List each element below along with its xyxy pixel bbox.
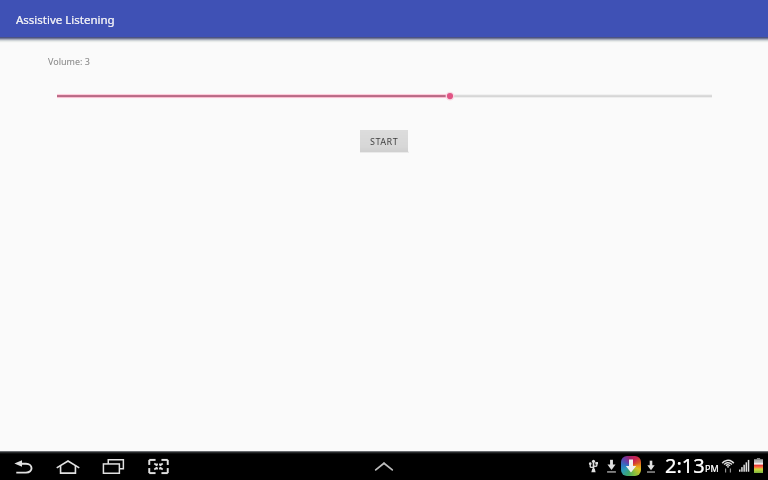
staticText: Volume: 3 — [48, 55, 90, 67]
staticText: 2:13 — [665, 452, 705, 479]
staticText: PM — [705, 462, 719, 474]
button[interactable]: Recent apps — [96, 451, 130, 480]
button[interactable]: Expand status bar — [368, 451, 400, 480]
button[interactable]: Back — [6, 451, 40, 480]
button[interactable]: Home — [50, 451, 86, 480]
button[interactable]: START — [360, 130, 408, 152]
button[interactable] — [0, 82, 768, 108]
staticText: Assistive Listening — [16, 12, 115, 28]
staticText: START — [370, 135, 399, 147]
button[interactable]: Screenshot — [142, 451, 174, 480]
